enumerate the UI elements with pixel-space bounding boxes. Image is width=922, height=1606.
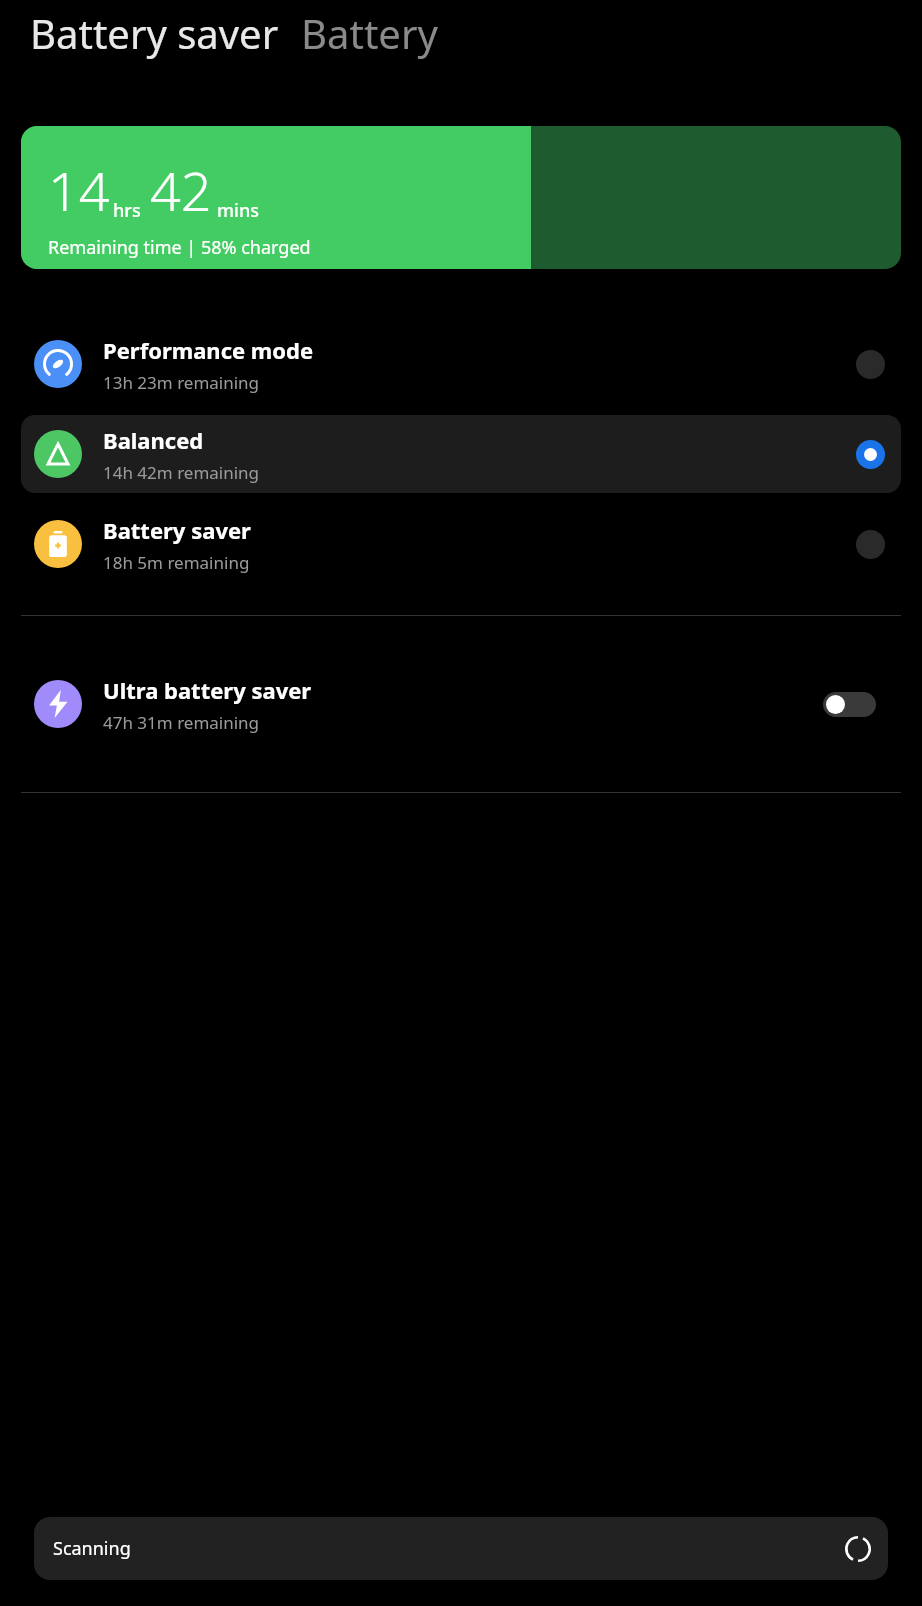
- button[interactable]: Battery saver: [21, 505, 901, 583]
- staticText: 47h 31m remaining: [103, 711, 260, 734]
- button[interactable]: Performance mode radio button: [850, 344, 890, 384]
- staticText: 42: [150, 153, 212, 227]
- staticText: 13h 23m remaining: [103, 371, 260, 394]
- staticText: Performance mode: [103, 335, 314, 365]
- staticText: 18h 5m remaining: [103, 551, 250, 574]
- staticText: mins: [217, 198, 259, 223]
- staticText: Battery: [301, 6, 438, 60]
- button[interactable]: Scanning: [34, 1517, 888, 1580]
- button[interactable]: Battery: [301, 6, 438, 60]
- button[interactable]: 14: [21, 126, 901, 269]
- button[interactable]: Ultra battery saver toggle: [823, 692, 876, 717]
- button[interactable]: Refresh scan: [840, 1531, 876, 1567]
- button[interactable]: Balanced: [21, 415, 901, 493]
- button[interactable]: Battery saver radio button: [850, 524, 890, 564]
- staticText: Battery saver: [30, 6, 279, 60]
- staticText: Remaining time | 58% charged: [48, 235, 311, 260]
- staticText: 14h 42m remaining: [103, 461, 260, 484]
- button[interactable]: Performance mode: [21, 325, 901, 403]
- staticText: Battery saver: [103, 515, 251, 545]
- button[interactable]: Ultra battery saver: [0, 656, 922, 752]
- button[interactable]: Battery saver: [30, 6, 279, 60]
- staticText: 14: [48, 153, 110, 227]
- staticText: Balanced: [103, 425, 204, 455]
- staticText: hrs: [113, 198, 141, 223]
- staticText: Scanning: [53, 1536, 131, 1561]
- button[interactable]: Balanced radio button: [850, 434, 890, 474]
- staticText: Ultra battery saver: [103, 675, 312, 705]
